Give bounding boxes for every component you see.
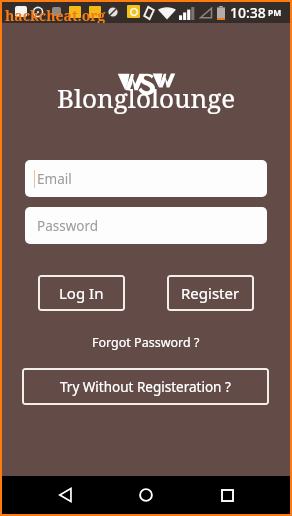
button[interactable]: Recents	[209, 477, 245, 513]
button[interactable]: Try Without Registeration ?	[22, 368, 269, 405]
staticText: Register	[181, 283, 240, 303]
button[interactable]: Back	[47, 477, 83, 513]
button[interactable]: Password	[25, 207, 267, 244]
staticText: Forgot Password ?	[92, 334, 200, 351]
staticText: Log In	[59, 283, 104, 303]
button[interactable]: Home	[128, 477, 164, 513]
button[interactable]: Forgot Password ?	[86, 331, 206, 354]
button[interactable]: Email	[25, 160, 267, 197]
staticText: Try Without Registeration ?	[60, 378, 231, 396]
staticText: Email	[37, 170, 72, 188]
button[interactable]: Log In	[38, 275, 125, 311]
staticText: Password	[37, 217, 99, 235]
staticText: hackcheat.org	[5, 6, 106, 25]
staticText: PM	[268, 7, 282, 19]
staticText: 10:38	[230, 3, 266, 22]
button[interactable]: Register	[167, 275, 254, 311]
staticText: Blonglolounge	[57, 80, 236, 115]
